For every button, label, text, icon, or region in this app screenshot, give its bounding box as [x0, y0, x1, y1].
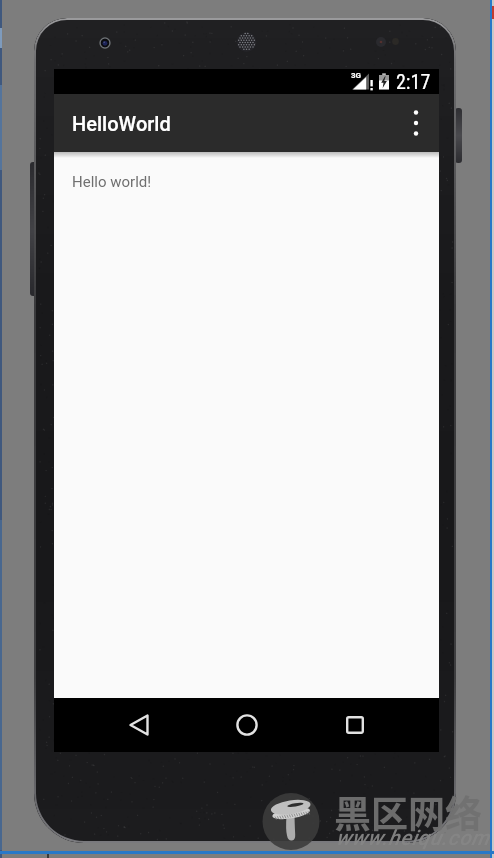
button[interactable]: [301, 698, 409, 752]
button[interactable]: [393, 94, 439, 152]
staticText: 2:17: [396, 70, 431, 93]
staticText: HelloWorld: [72, 112, 171, 135]
button[interactable]: [85, 698, 193, 752]
staticText: Hello world!: [72, 173, 152, 191]
staticText: 3G: [351, 71, 362, 80]
button[interactable]: [193, 698, 301, 752]
